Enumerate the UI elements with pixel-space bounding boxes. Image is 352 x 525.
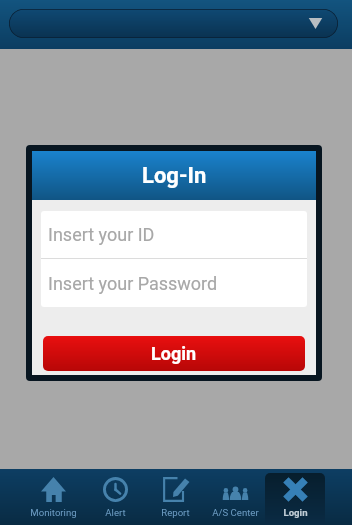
button[interactable]: Monitoring	[23, 473, 83, 525]
staticText: A/S Center	[212, 507, 259, 518]
staticText: Report	[161, 507, 190, 518]
button[interactable]: Insert your Password	[41, 259, 307, 307]
button[interactable]: Report	[145, 473, 205, 525]
staticText: Insert your ID	[48, 224, 155, 245]
staticText: Monitoring	[30, 507, 77, 518]
button[interactable]: Login	[265, 473, 325, 525]
staticText: Log-In	[142, 163, 207, 189]
staticText: Login	[151, 343, 197, 364]
staticText: Insert your Password	[48, 273, 218, 294]
button[interactable]: Alert	[85, 473, 145, 525]
button[interactable]: Select site	[9, 9, 338, 38]
button[interactable]: Login	[43, 336, 305, 371]
staticText: Login	[283, 507, 308, 518]
staticText: Alert	[105, 507, 126, 518]
button[interactable]: Insert your ID	[41, 211, 307, 258]
button[interactable]: A/S Center	[205, 473, 265, 525]
